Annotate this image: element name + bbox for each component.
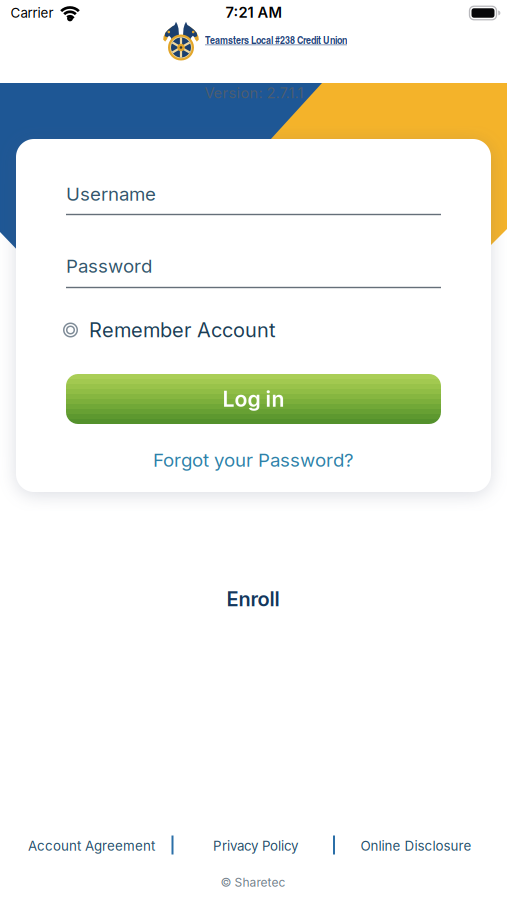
button[interactable]: Enroll bbox=[226, 587, 279, 611]
button[interactable]: Forgot your Password? bbox=[153, 449, 354, 471]
button[interactable]: Remember Account bbox=[63, 318, 276, 342]
button[interactable]: Privacy Policy bbox=[213, 838, 298, 854]
staticText: 7:21 AM bbox=[225, 4, 282, 21]
staticText: Teamsters Local #238 Credit Union bbox=[205, 32, 347, 47]
button[interactable]: Log in bbox=[66, 374, 441, 424]
staticText: Account Agreement bbox=[28, 838, 155, 854]
staticText: Version: 2.7.1.1 bbox=[204, 84, 303, 102]
staticText: Log in bbox=[222, 386, 284, 412]
button[interactable]: Online Disclosure bbox=[360, 838, 471, 854]
staticText: Username bbox=[66, 183, 156, 205]
staticText: © Sharetec bbox=[220, 875, 285, 890]
button[interactable]: Teamsters Local #238 Credit Union bbox=[159, 20, 347, 64]
staticText: Online Disclosure bbox=[360, 838, 471, 854]
staticText: Carrier bbox=[10, 5, 53, 21]
staticText: Privacy Policy bbox=[213, 838, 298, 854]
staticText: Password bbox=[66, 255, 152, 277]
button[interactable]: Account Agreement bbox=[28, 838, 155, 854]
staticText: Remember Account bbox=[89, 318, 276, 342]
staticText: Enroll bbox=[226, 587, 279, 611]
staticText: Forgot your Password? bbox=[153, 449, 354, 471]
